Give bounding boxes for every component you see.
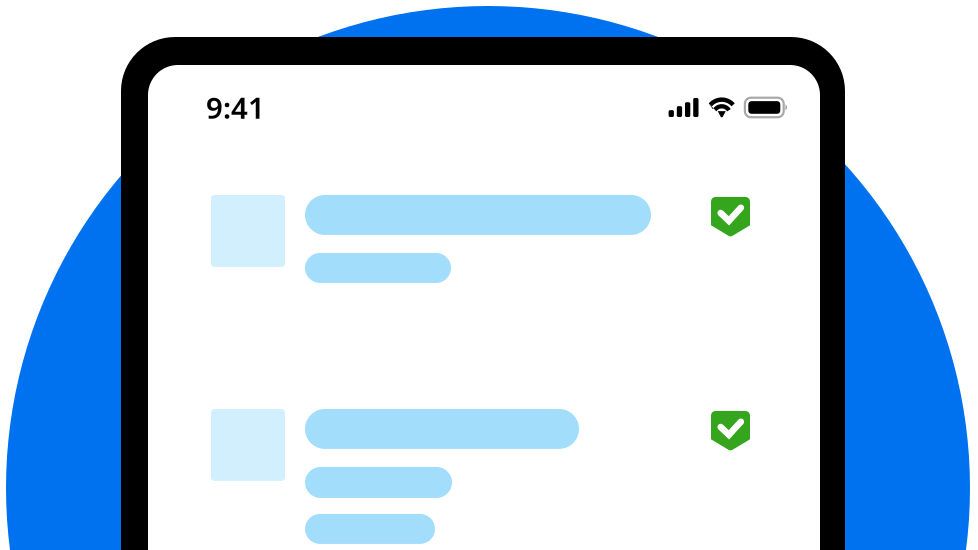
button[interactable]: Loading item	[211, 409, 579, 544]
button[interactable]: Loading item	[211, 195, 651, 283]
button[interactable]: Verified	[711, 411, 750, 450]
staticText: 9:41	[206, 88, 265, 127]
button[interactable]: Verified	[711, 197, 750, 236]
